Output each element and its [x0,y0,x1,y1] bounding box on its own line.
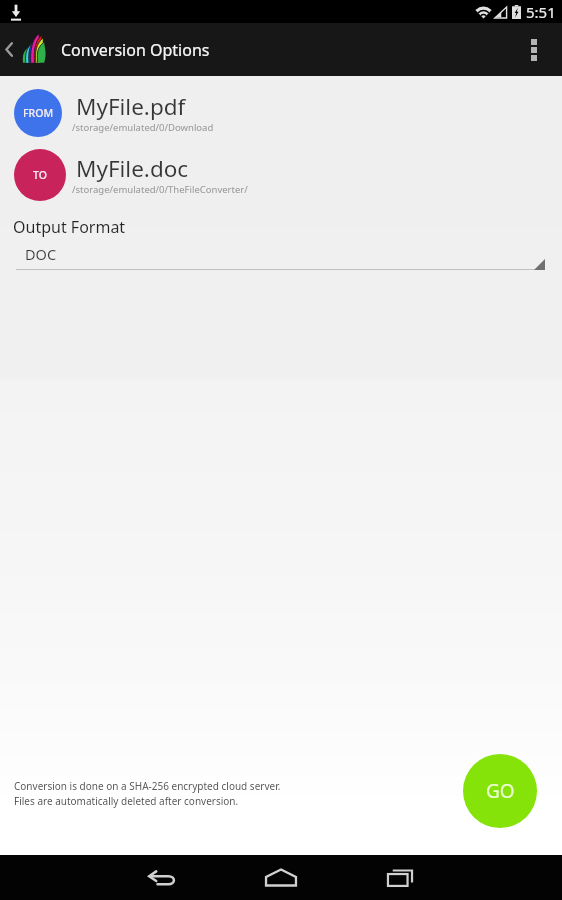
staticText: TO [33,168,47,182]
button[interactable]: TO [0,149,562,201]
button[interactable]: Home [244,855,318,900]
button[interactable]: DOC [13,244,545,270]
staticText: MyFile.pdf [76,91,186,122]
staticText: 5:51 [526,2,556,22]
staticText: Files are automatically deleted after co… [14,794,239,808]
staticText: Conversion is done on a SHA-256 encrypte… [14,779,281,793]
staticText: MyFile.doc [76,153,189,184]
button[interactable]: More options [518,23,562,76]
button[interactable]: Back [0,23,18,76]
staticText: DOC [25,244,57,264]
staticText: GO [486,778,515,804]
button[interactable]: FROM [0,89,562,137]
staticText: Output Format [13,216,126,238]
staticText: FROM [23,106,54,120]
button[interactable]: Back [125,855,199,900]
staticText: Conversion Options [61,39,210,61]
button[interactable]: GO [463,754,537,828]
button[interactable]: Recent apps [363,855,437,900]
staticText: /storage/emulated/0/Download [72,121,214,134]
staticText: /storage/emulated/0/TheFileConverter/ [72,183,248,196]
